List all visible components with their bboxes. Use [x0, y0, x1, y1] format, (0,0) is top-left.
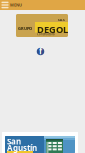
button[interactable]: Facebook	[35, 46, 45, 56]
staticText: San	[7, 136, 21, 147]
staticText: f	[39, 46, 42, 56]
button[interactable]: MENU	[0, 0, 85, 10]
staticText: S.A.S.	[58, 18, 65, 22]
staticText: Agustín	[7, 143, 37, 153]
staticText: MENU	[10, 2, 22, 8]
button[interactable]: San	[2, 132, 78, 153]
staticText: Constructora	[37, 32, 54, 36]
staticText: GRUPO	[18, 26, 32, 31]
staticText: DEGOL	[37, 23, 68, 36]
